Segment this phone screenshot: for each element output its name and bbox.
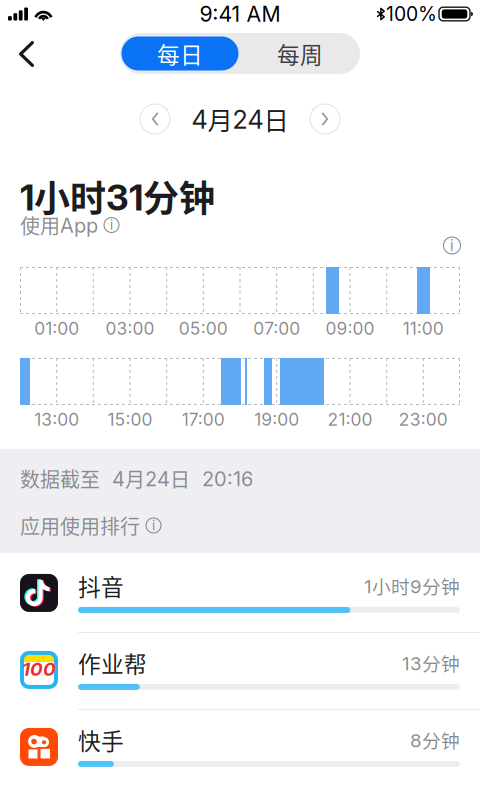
staticText: 09:00 <box>325 318 374 339</box>
staticText: 抖音 <box>78 569 124 602</box>
staticText: 1小时31分钟 <box>20 170 215 222</box>
staticText: 19:00 <box>254 409 299 430</box>
button[interactable]: Chart info <box>443 237 460 254</box>
staticText: 9:41 AM <box>199 1 280 27</box>
staticText: 每日 <box>157 37 203 70</box>
staticText: 8分钟 <box>410 726 460 753</box>
staticText: i <box>450 236 454 254</box>
staticText: 每周 <box>277 37 323 70</box>
staticText: 17:00 <box>182 409 225 430</box>
button[interactable]: 抖音 <box>0 574 480 651</box>
staticText: 01:00 <box>34 318 79 339</box>
button[interactable]: 每日 <box>120 33 240 74</box>
staticText: 应用使用排行 <box>20 511 140 540</box>
staticText: 4月24日 <box>191 101 288 137</box>
button[interactable]: Next day <box>310 104 340 134</box>
button[interactable]: Back <box>0 28 46 76</box>
staticText: 23:00 <box>399 409 448 430</box>
staticText: 100 <box>22 658 56 680</box>
staticText: 1小时9分钟 <box>364 572 460 599</box>
staticText: 13分钟 <box>402 649 460 676</box>
staticText: 13:00 <box>34 409 79 430</box>
staticText: 数据截至 4月24日 20:16 <box>20 464 253 493</box>
staticText: 使用App <box>20 210 98 239</box>
staticText: 11:00 <box>403 318 444 339</box>
staticText: 05:00 <box>179 318 228 339</box>
button[interactable]: 快手 <box>0 728 480 786</box>
staticText: i <box>110 217 113 233</box>
button[interactable]: 100 <box>0 651 480 728</box>
button[interactable]: Previous day <box>140 104 170 134</box>
button[interactable]: 每周 <box>240 33 360 74</box>
staticText: 21:00 <box>327 409 372 430</box>
staticText: 快手 <box>78 723 124 756</box>
staticText: 03:00 <box>105 318 154 339</box>
staticText: 15:00 <box>107 409 152 430</box>
staticText: 100% <box>386 2 437 26</box>
staticText: 作业帮 <box>78 646 147 679</box>
staticText: i <box>152 517 155 533</box>
staticText: 07:00 <box>253 318 300 339</box>
